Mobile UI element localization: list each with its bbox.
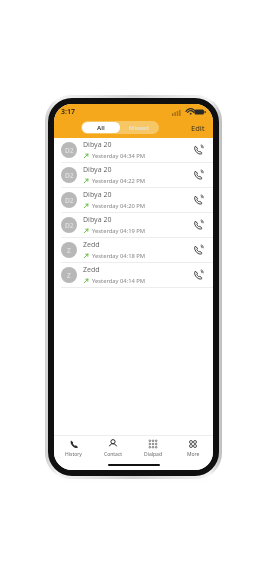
button[interactable]: Call details [190,142,206,158]
button[interactable]: All [82,122,120,133]
button[interactable]: Z [54,263,213,288]
button[interactable]: Edit [189,122,207,134]
staticText: Dialpad [144,451,162,458]
staticText: 3:17 [61,107,75,117]
button[interactable]: Call details [190,267,206,283]
staticText: Yesterday 04:14 PM [92,277,146,285]
staticText: Contact [104,451,123,458]
button[interactable]: History [54,436,93,460]
button[interactable]: Dialpad [133,436,173,460]
button[interactable]: Call details [190,217,206,233]
staticText: Zedd [83,240,100,250]
staticText: Dibya 20 [83,190,112,200]
staticText: Z [67,246,71,255]
staticText: Z [67,271,71,280]
staticText: Missed [129,124,149,132]
button[interactable]: Contact [93,436,133,460]
staticText: Dibya 20 [83,215,112,225]
button[interactable]: Call details [190,167,206,183]
staticText: Yesterday 04:18 PM [92,252,146,260]
button[interactable]: Call details [190,192,206,208]
staticText: D2 [65,171,74,180]
staticText: Dibya 20 [83,140,112,150]
staticText: Edit [191,123,205,133]
button[interactable]: D2 [54,138,213,163]
button[interactable]: D2 [54,188,213,213]
staticText: More [187,451,200,458]
staticText: All [97,124,105,132]
staticText: D2 [65,221,74,230]
staticText: History [65,451,82,458]
staticText: Yesterday 04:34 PM [92,152,146,160]
staticText: Yesterday 04:20 PM [92,202,146,210]
staticText: Yesterday 04:22 PM [92,177,146,185]
button[interactable]: Z [54,238,213,263]
staticText: D2 [65,196,74,205]
button[interactable]: D2 [54,213,213,238]
staticText: Zedd [83,265,100,275]
staticText: Dibya 20 [83,165,112,175]
button[interactable]: D2 [54,163,213,188]
button[interactable]: Call details [190,242,206,258]
staticText: D2 [65,146,74,155]
button[interactable]: More [173,436,213,460]
staticText: Yesterday 04:19 PM [92,227,146,235]
button[interactable]: Missed [120,122,158,133]
